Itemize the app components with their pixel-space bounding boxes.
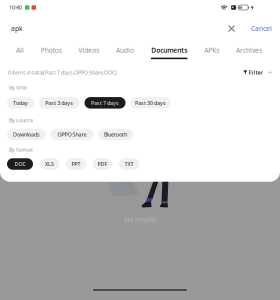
button[interactable]: Clear search text <box>224 21 239 36</box>
staticText: TXT <box>124 160 133 168</box>
staticText: OPPO Share <box>57 131 86 138</box>
button[interactable]: Bluetooth <box>98 129 133 140</box>
button[interactable]: Documents <box>148 42 191 62</box>
staticText: XLS <box>45 160 54 168</box>
button[interactable]: Videos <box>75 42 102 62</box>
staticText: All <box>16 46 24 55</box>
button[interactable]: Cancel <box>251 24 272 33</box>
staticText: 10:40 <box>9 4 22 11</box>
button[interactable]: Filter <box>243 66 272 79</box>
staticText: Downloads <box>13 131 40 138</box>
staticText: Filter <box>248 69 262 76</box>
staticText: apk <box>11 24 23 33</box>
button[interactable]: Audio <box>113 42 137 62</box>
button[interactable]: PDF <box>92 158 112 170</box>
button[interactable]: Downloads <box>7 129 46 140</box>
staticText: Cancel <box>251 24 272 33</box>
staticText: PPT <box>71 160 80 168</box>
staticText: Bluetooth <box>104 131 127 138</box>
button[interactable]: PPT <box>66 158 86 170</box>
button[interactable]: Archives <box>233 42 265 62</box>
staticText: By format <box>9 146 33 153</box>
staticText: Videos <box>78 46 99 55</box>
button[interactable]: DOC <box>7 158 33 170</box>
staticText: 0 items in total(Past 7 days,OPPO Share,… <box>8 69 117 76</box>
button[interactable]: Today <box>7 97 34 109</box>
button[interactable]: XLS <box>39 158 59 170</box>
staticText: Documents <box>151 46 187 55</box>
button[interactable]: Photos <box>38 42 65 62</box>
staticText: Archives <box>236 46 262 55</box>
button[interactable]: Past 3 days <box>39 97 79 109</box>
button[interactable]: Past 30 days <box>130 97 170 109</box>
staticText: APKs <box>204 46 219 55</box>
staticText: Past 7 days <box>91 99 119 106</box>
staticText: By time <box>9 84 27 91</box>
button[interactable]: TXT <box>119 158 139 170</box>
staticText: Past 3 days <box>45 99 73 106</box>
button[interactable]: Past 7 days <box>84 97 125 109</box>
staticText: Audio <box>116 46 134 55</box>
staticText: PDF <box>97 160 107 168</box>
button[interactable]: APKs <box>201 42 222 62</box>
staticText: Today <box>13 99 28 106</box>
staticText: DOC <box>14 160 25 168</box>
button[interactable]: All <box>13 42 27 62</box>
button[interactable]: OPPO Share <box>50 129 93 140</box>
staticText: Photos <box>41 46 62 55</box>
staticText: No results <box>124 215 156 224</box>
staticText: Past 30 days <box>135 99 166 106</box>
staticText: By source <box>9 117 33 124</box>
